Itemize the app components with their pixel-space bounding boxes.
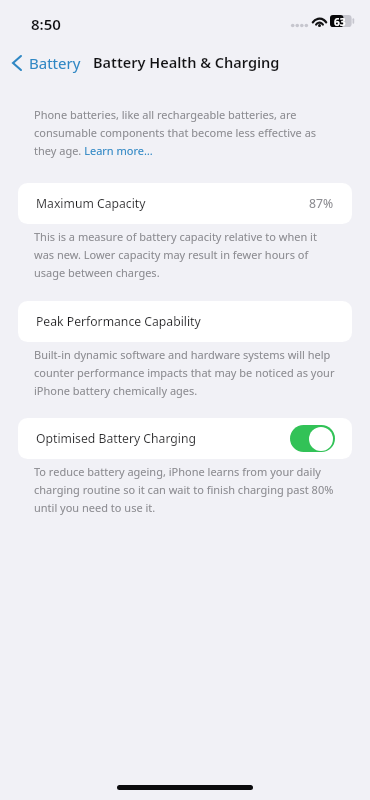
- staticText: Peak Performance Capability: [36, 313, 201, 330]
- button[interactable]: Optimised Battery Charging: [18, 418, 352, 459]
- staticText: Maximum Capacity: [36, 195, 146, 212]
- button[interactable]: Battery: [0, 47, 89, 79]
- staticText: Optimised Battery Charging: [36, 430, 196, 447]
- button[interactable]: Optimised Battery Charging: [290, 425, 335, 452]
- button[interactable]: Maximum Capacity: [18, 183, 352, 224]
- staticText: 87%: [309, 195, 334, 212]
- staticText: Battery Health & Charging: [93, 52, 280, 72]
- staticText: To reduce battery ageing, iPhone learns …: [34, 464, 336, 515]
- staticText: This is a measure of battery capacity re…: [34, 229, 336, 280]
- staticText: Phone batteries, like all rechargeable b…: [34, 107, 336, 158]
- button[interactable]: Peak Performance Capability: [18, 301, 352, 342]
- staticText: Built-in dynamic software and hardware s…: [34, 347, 336, 398]
- staticText: 8:50: [31, 14, 61, 34]
- staticText: Battery: [29, 53, 81, 73]
- other: Battery 63 percent: [330, 15, 354, 27]
- staticText: 63: [334, 15, 346, 27]
